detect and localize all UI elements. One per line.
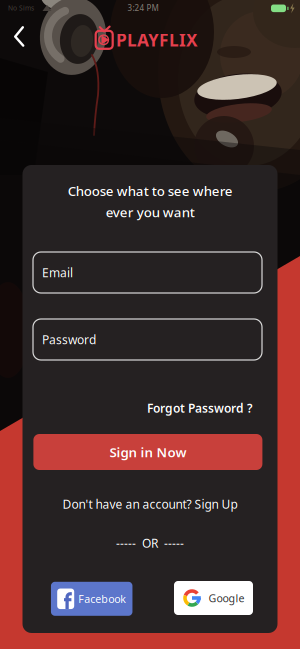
staticText: ----- OR ----- (116, 535, 184, 551)
staticText: Google (208, 591, 244, 605)
button[interactable]: Facebook (51, 582, 132, 616)
staticText: No Sims (8, 4, 34, 12)
staticText: Don't have an account? Sign Up (62, 496, 237, 512)
button[interactable]: Google (174, 581, 253, 615)
staticText: 3:24 PM (127, 3, 158, 13)
button[interactable]: Forgot Password ? (47, 399, 253, 417)
staticText: Sign in Now (109, 443, 186, 461)
staticText: Email (42, 264, 73, 280)
button[interactable]: Password (33, 319, 262, 360)
button[interactable]: Email (33, 252, 262, 293)
staticText: Forgot Password ? (147, 400, 253, 416)
staticText: Password (42, 331, 96, 347)
staticText: PLAYFLIX (116, 28, 198, 51)
staticText: Facebook (78, 592, 126, 606)
button[interactable]: Don't have an account? Sign Up (62, 496, 237, 512)
staticText: Choose what to see where ever you want (67, 182, 232, 221)
button[interactable] (7, 22, 31, 50)
button[interactable]: Sign in Now (33, 434, 262, 470)
